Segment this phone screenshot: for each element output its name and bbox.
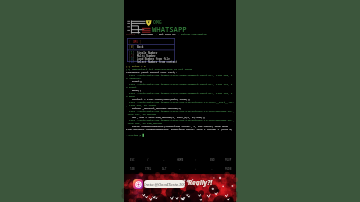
button[interactable]: CTRL	[140, 166, 156, 171]
staticText: 2	[131, 54, 133, 57]
staticText: Select Number from contact	[137, 60, 177, 63]
staticText: Multi Number	[137, 54, 156, 57]
staticText: contact = json.loads(open(path).read())	[126, 97, 191, 100]
staticText: File "/data/data/com.termux/files/usr/li…	[126, 118, 235, 121]
staticText: menu()	[126, 88, 142, 91]
staticText: →	[211, 167, 213, 171]
staticText: [	[129, 51, 131, 54]
button[interactable]: /	[140, 157, 156, 162]
staticText: File "/data/data/com.termux/files/usr/li…	[126, 109, 235, 112]
staticText: ESC	[130, 158, 135, 162]
staticText: input()	[126, 79, 143, 82]
staticText: Really?!	[188, 178, 213, 187]
staticText: WHATSAPP	[152, 24, 187, 34]
staticText: line 337, in decode	[126, 112, 157, 115]
staticText: ]	[133, 54, 137, 57]
staticText: ]	[138, 40, 142, 44]
staticText: Author	[126, 32, 136, 35]
staticText: n <module>	[126, 76, 142, 79]
staticText: Bot Tool by	[159, 32, 176, 35]
staticText: json.decoder.JSONDecodeError: Expecting …	[126, 127, 233, 130]
button[interactable]: TAB	[124, 166, 140, 171]
button[interactable]: PGDN	[220, 166, 236, 171]
staticText: TAB	[130, 167, 135, 171]
staticText: Traceback (most recent call last):	[126, 70, 178, 73]
staticText: Single Number	[137, 51, 158, 54]
staticText: [~] Enter > 0	[126, 64, 146, 67]
button[interactable]: END	[204, 157, 220, 162]
staticText: ]	[133, 57, 137, 60]
button[interactable]: [	[129, 60, 177, 63]
staticText: raise JSONDecodeError("Expecting value",…	[126, 124, 229, 127]
staticText: 3	[131, 57, 133, 60]
button[interactable]: Insta @GoodTaste.100	[144, 180, 185, 188]
staticText: [	[129, 45, 131, 49]
staticText: File "/data/data/com.termux/files/home/S…	[126, 91, 233, 94]
staticText: github.com/omgtsp	[181, 32, 207, 35]
staticText: obj, end = self.raw_decode(s, idx=_w(s, …	[126, 115, 206, 118]
staticText: n input	[126, 85, 137, 88]
staticText: -	[163, 158, 165, 162]
button[interactable]: PGUP	[220, 157, 236, 162]
staticText: Nickname	[141, 32, 154, 35]
staticText: 0	[131, 45, 133, 49]
staticText: ←	[179, 167, 181, 171]
staticText: File "/data/data/com.termux/files/usr/li…	[126, 100, 235, 103]
staticText: PGUP	[225, 158, 232, 162]
staticText: ↓	[195, 167, 197, 171]
staticText: OMG	[133, 40, 138, 44]
staticText: Load Number from file	[137, 57, 170, 60]
staticText: PGDN	[225, 167, 232, 171]
staticText: line 355, in raw_decode	[126, 121, 163, 124]
staticText: ]	[133, 60, 137, 63]
staticText: [!] omgcontact.txt inaccessible or not f…	[126, 67, 193, 70]
staticText: return _default_decoder.decode(s)	[126, 106, 182, 109]
staticText: Back	[137, 45, 144, 49]
button[interactable]: [	[129, 57, 170, 60]
button[interactable]: [	[129, 51, 158, 54]
button[interactable]: Instagram	[133, 179, 143, 189]
staticText: Insta @GoodTaste.100	[144, 182, 185, 187]
button[interactable]: [	[129, 54, 156, 57]
staticText: [	[129, 57, 131, 60]
staticText: ↑	[195, 158, 197, 162]
button[interactable]: ALT	[156, 166, 172, 171]
staticText: 1	[131, 51, 133, 54]
staticText: n menu	[126, 94, 136, 97]
staticText: |	[154, 32, 159, 35]
staticText: File "/data/data/com.termux/files/home/S…	[126, 73, 233, 76]
button[interactable]: HOME	[172, 157, 188, 162]
staticText: ]	[133, 51, 137, 54]
staticText: ]	[133, 45, 137, 49]
staticText: END	[210, 158, 215, 162]
staticText: :	[136, 32, 141, 35]
staticText: , line 346, in loads	[126, 103, 157, 106]
staticText: /	[147, 158, 149, 162]
staticText: OMG	[153, 19, 162, 26]
staticText: 4	[131, 60, 133, 63]
staticText: File "/data/data/com.termux/files/home/S…	[126, 82, 233, 85]
staticText: ~/system $ █	[126, 133, 145, 136]
staticText: [	[129, 40, 133, 44]
staticText: [	[129, 54, 131, 57]
button[interactable]: ESC	[124, 157, 140, 162]
staticText: ALT	[162, 167, 167, 171]
staticText: [	[129, 60, 131, 63]
staticText: HOME	[177, 158, 184, 162]
staticText: CTRL	[145, 167, 152, 171]
